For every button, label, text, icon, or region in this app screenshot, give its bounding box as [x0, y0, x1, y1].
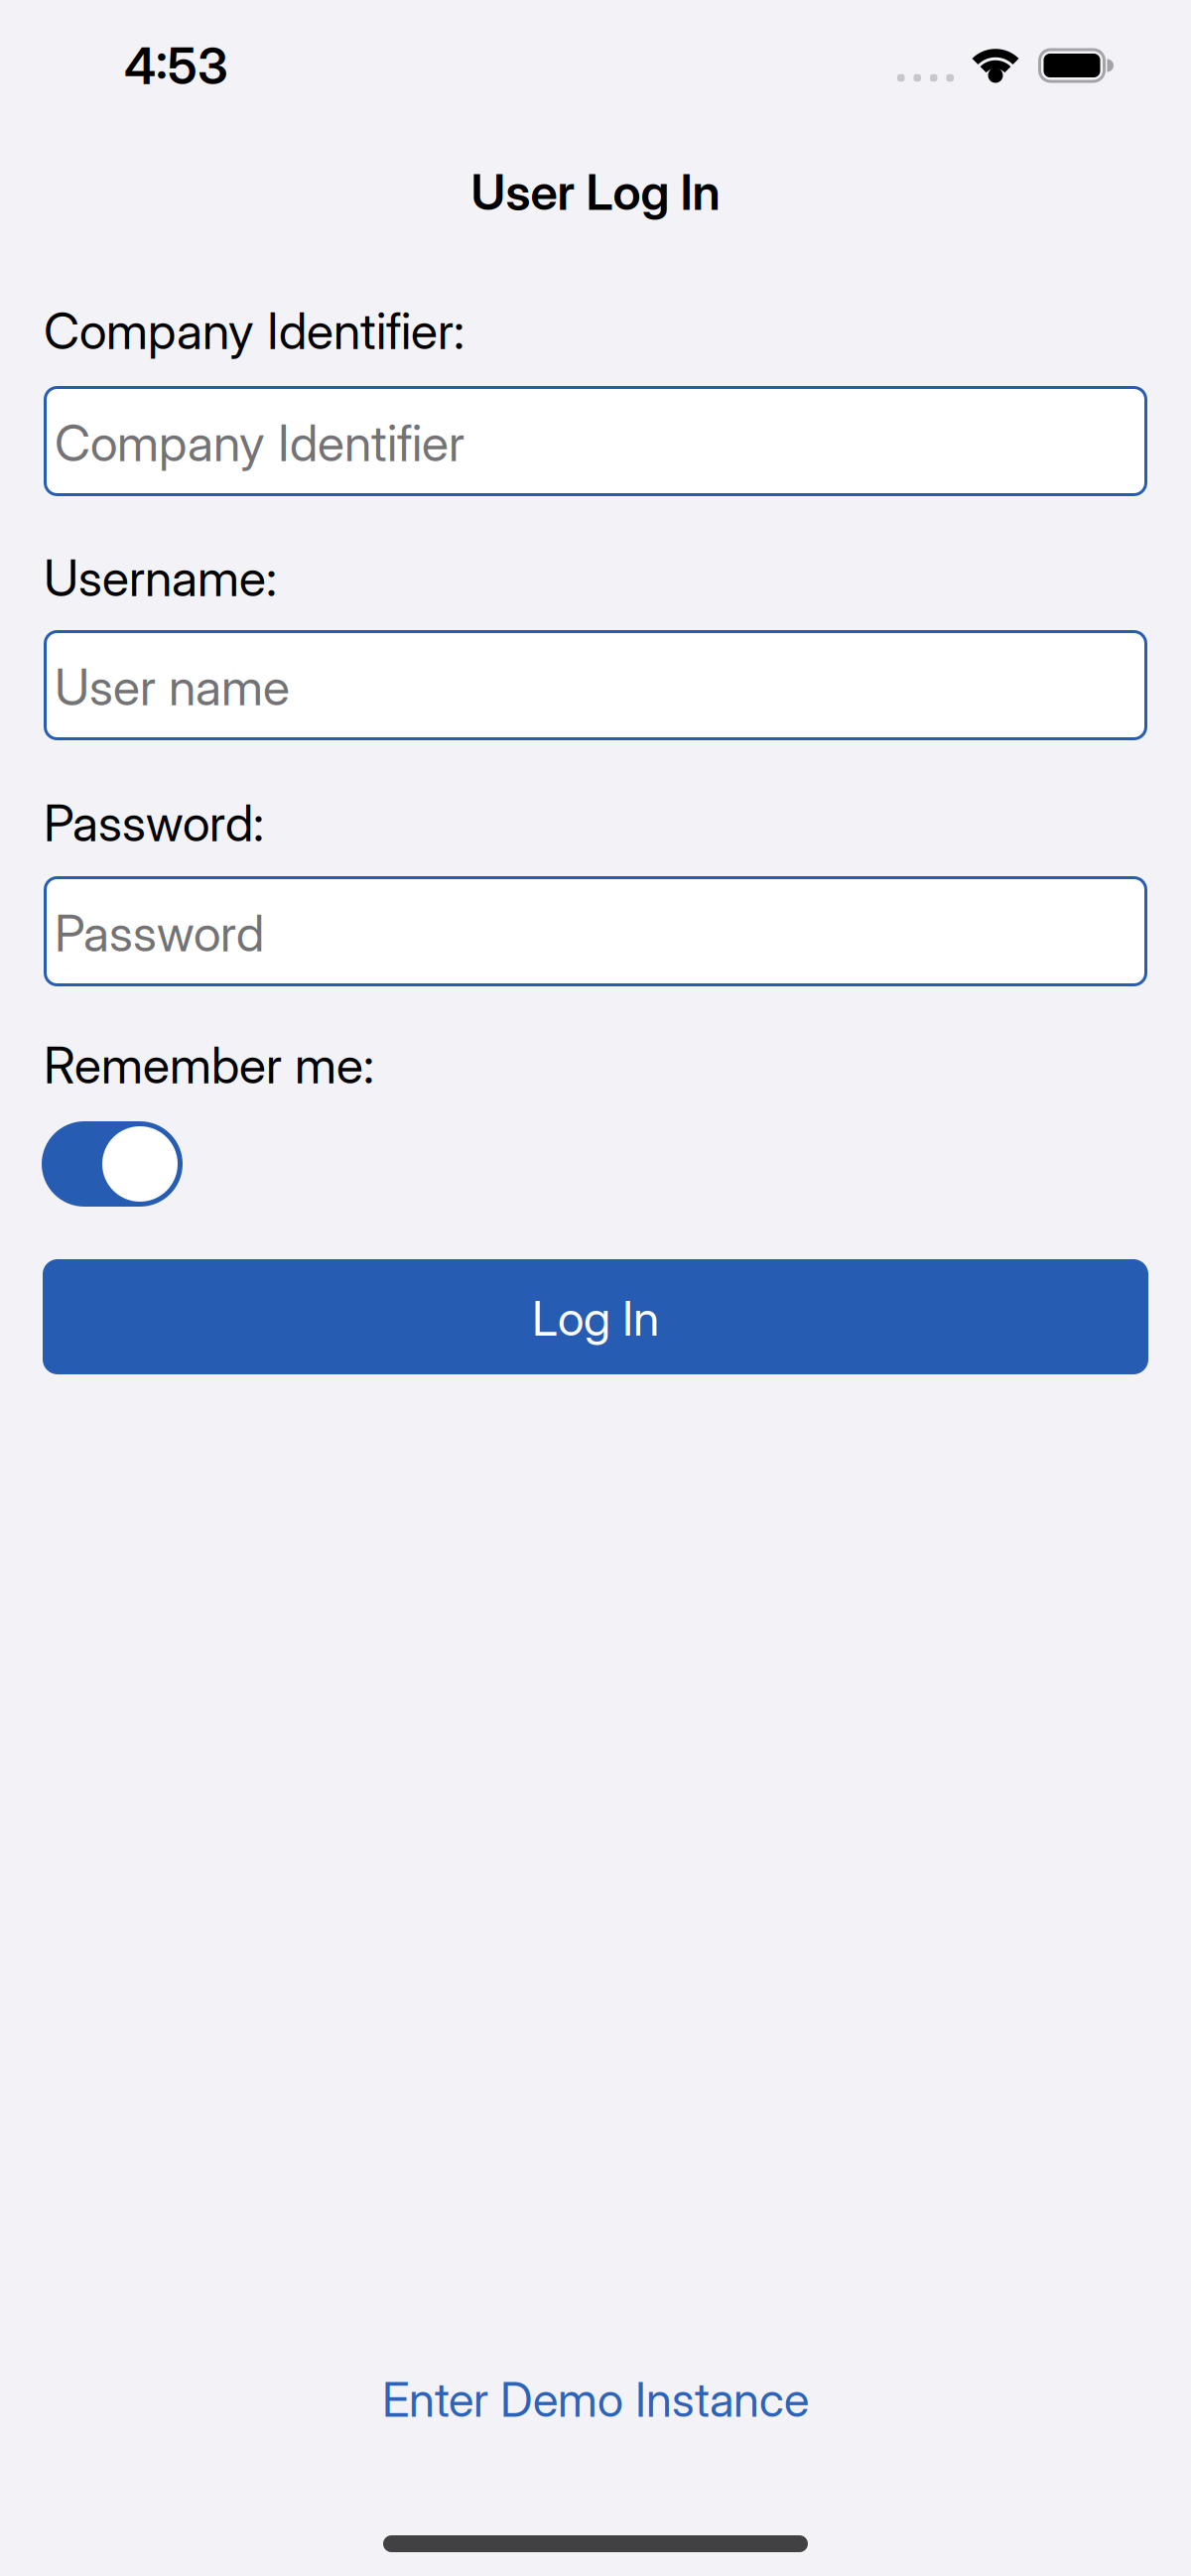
button[interactable]: Log In — [43, 1259, 1148, 1374]
staticText: 4:53 — [124, 36, 228, 96]
staticText: Password — [55, 903, 264, 963]
staticText: Password: — [44, 793, 264, 853]
staticText: Enter Demo Instance — [382, 2371, 809, 2428]
staticText: Log In — [532, 1289, 659, 1347]
button[interactable]: Enter Demo Instance — [382, 2371, 809, 2428]
staticText: User Log In — [471, 162, 720, 222]
staticText: Company Identifier — [55, 413, 464, 473]
staticText: Username: — [44, 548, 277, 608]
staticText: Remember me: — [44, 1035, 374, 1095]
button[interactable]: Remember me — [42, 1121, 183, 1207]
staticText: Company Identifier: — [44, 301, 464, 361]
staticText: User name — [55, 657, 290, 717]
